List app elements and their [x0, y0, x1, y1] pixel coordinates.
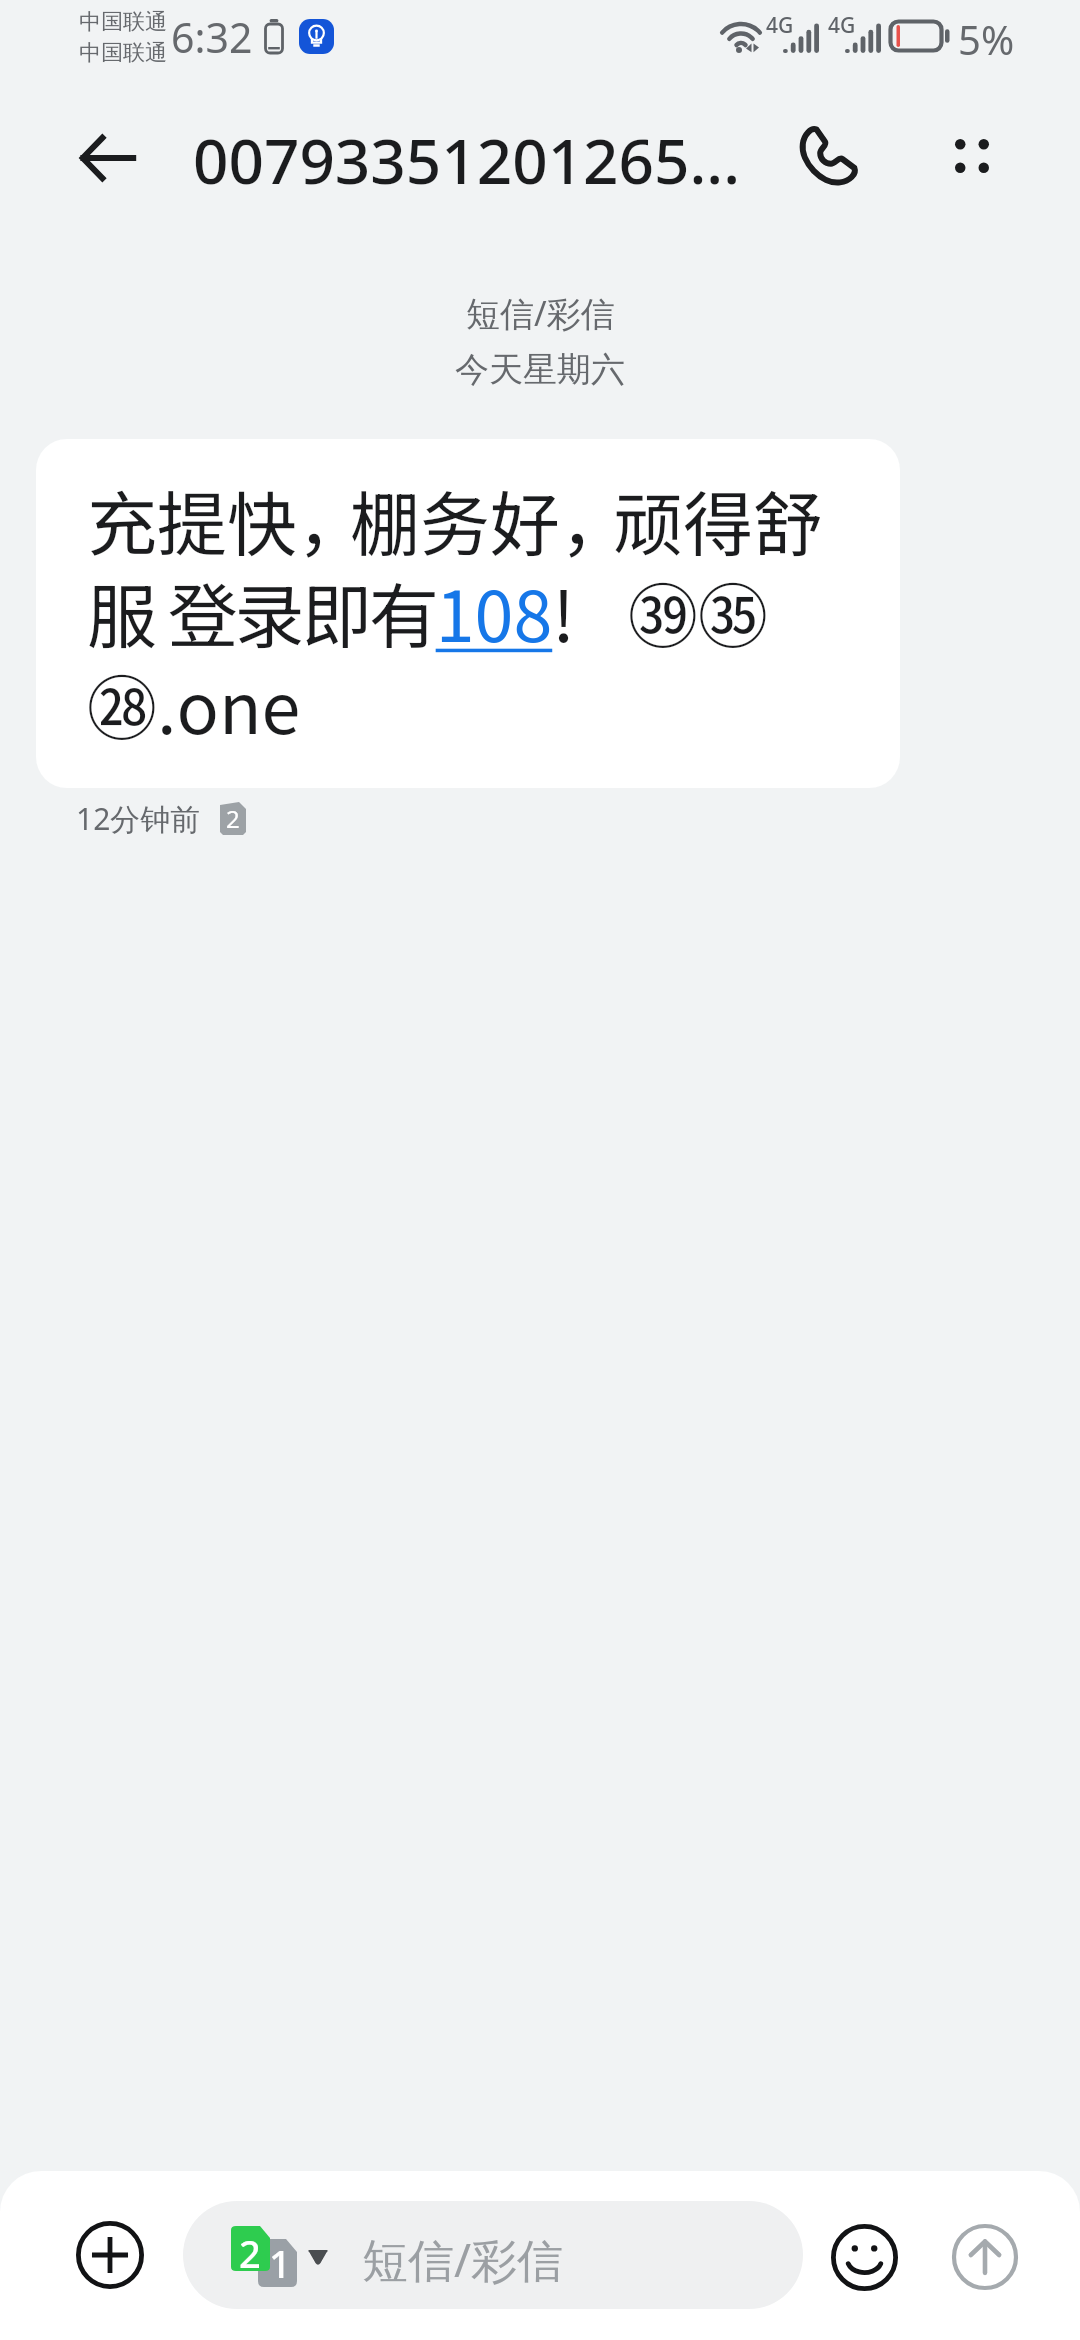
staticText: 中国联通	[79, 8, 167, 36]
staticText: 00793351201265...	[193, 118, 741, 202]
button[interactable]: More options	[930, 114, 1014, 198]
button[interactable]: Send	[946, 2218, 1024, 2296]
button[interactable]: 2	[183, 2201, 803, 2309]
staticText: 4G	[766, 11, 794, 40]
button[interactable]: Add attachment	[71, 2216, 149, 2294]
staticText: 今天星期六	[455, 348, 625, 391]
staticText: 中国联通	[79, 39, 167, 67]
button[interactable]: 充提快，棚务好，顽得舒服 登录即有108! ㊴㉟㉘.one	[36, 439, 900, 788]
staticText: 短信/彩信	[362, 2228, 564, 2291]
staticText: 充提快，棚务好，顽得舒服 登录即有108! ㊴㉟㉘.one	[87, 469, 880, 754]
button[interactable]: Emoji	[825, 2218, 903, 2296]
staticText: 1	[269, 2237, 291, 2289]
button[interactable]: Back	[68, 118, 148, 198]
staticText: 4G	[828, 11, 856, 40]
button[interactable]: Call	[788, 116, 868, 196]
staticText: 5%	[958, 12, 1015, 66]
staticText: 12分钟前	[76, 798, 201, 839]
staticText: 6:32	[171, 9, 253, 65]
staticText: 2	[226, 802, 240, 835]
staticText: 短信/彩信	[466, 290, 615, 336]
staticText: 2	[239, 2227, 261, 2279]
